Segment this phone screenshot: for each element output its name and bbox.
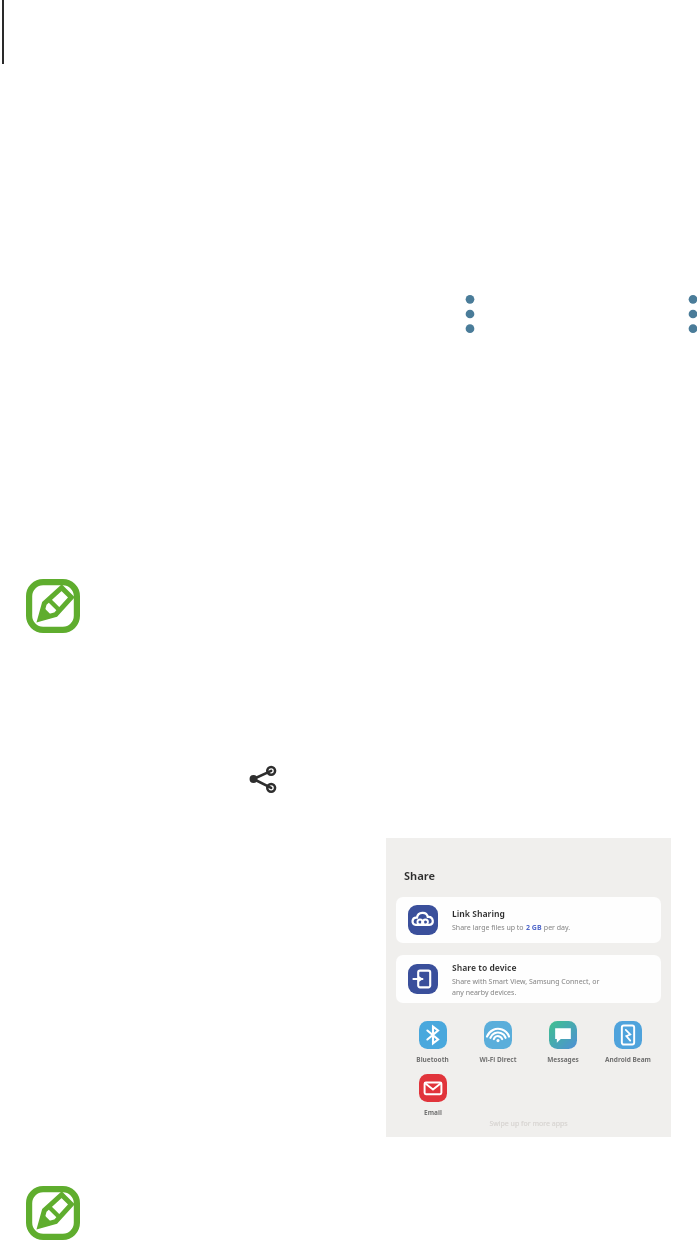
button[interactable]: Android Beam	[595, 1021, 660, 1064]
button[interactable]: Share	[246, 762, 280, 796]
button[interactable]: Wi-Fi Direct	[465, 1021, 530, 1064]
staticText: Link Sharing	[452, 908, 505, 920]
staticText: Share large files up to	[452, 923, 526, 933]
staticText: Messages	[547, 1055, 579, 1064]
button[interactable]: Bluetooth	[400, 1021, 465, 1064]
button[interactable]: Messages	[530, 1021, 595, 1064]
button[interactable]: Share to device	[396, 955, 661, 1003]
button[interactable]: More options	[679, 292, 697, 336]
staticText: 2 GB	[526, 923, 542, 933]
staticText: Bluetooth	[416, 1055, 449, 1064]
button[interactable]: Link Sharing	[396, 897, 661, 943]
staticText: per day.	[542, 923, 571, 933]
staticText: Android Beam	[605, 1055, 651, 1064]
button[interactable]: More options	[456, 292, 484, 336]
staticText: Swipe up for more apps	[386, 1119, 671, 1129]
button[interactable]: Email	[400, 1074, 465, 1117]
staticText: Share	[404, 868, 436, 883]
staticText: Wi-Fi Direct	[479, 1055, 517, 1064]
staticText: Email	[424, 1108, 442, 1117]
staticText: Share to device	[452, 962, 517, 974]
staticText: Share with Smart View, Samsung Connect, …	[452, 977, 600, 997]
